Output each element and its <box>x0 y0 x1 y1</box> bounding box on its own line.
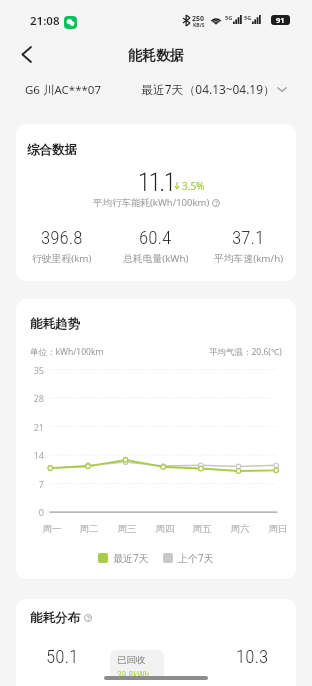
staticText: 3.5% <box>182 179 205 193</box>
staticText: 平均行车能耗(kWh/100km) <box>93 196 210 209</box>
staticText: 39.8kWh <box>117 669 150 680</box>
staticText: 周三 <box>112 523 142 535</box>
staticText: 能耗趋势 <box>30 316 80 332</box>
staticText: ? <box>215 199 218 207</box>
staticText: 91 <box>276 15 285 25</box>
staticText: 周六 <box>225 523 255 535</box>
staticText: 28 <box>16 392 44 404</box>
staticText: 周四 <box>150 523 180 535</box>
staticText: 35 <box>16 364 44 376</box>
staticText: 7 <box>16 478 44 490</box>
staticText: 平均车速(km/h) <box>214 252 284 265</box>
button[interactable]: 最近7天（04.13~04.19） <box>141 81 287 97</box>
staticText: 综合数据 <box>27 142 77 158</box>
staticText: 11.1 <box>138 168 175 197</box>
staticText: 行驶里程(km) <box>32 252 92 265</box>
staticText: 最近7天（04.13~04.19） <box>141 81 275 97</box>
staticText: 周二 <box>74 523 104 535</box>
staticText: 21 <box>16 421 44 433</box>
staticText: 单位：kWh/100km <box>30 346 104 358</box>
staticText: 已回收 <box>117 654 146 666</box>
staticText: 396.8 <box>41 226 83 248</box>
button[interactable]: Back <box>10 38 42 70</box>
staticText: 能耗数据 <box>128 47 184 65</box>
staticText: 250 <box>192 14 205 24</box>
staticText: 5G <box>225 14 233 21</box>
staticText: 总耗电量(kWh) <box>123 252 189 265</box>
staticText: 最近7天 <box>113 551 149 565</box>
staticText: 周日 <box>263 523 293 535</box>
staticText: ? <box>87 614 90 622</box>
staticText: G6 川AC***07 <box>25 82 101 98</box>
staticText: 5G <box>244 14 252 21</box>
button[interactable]: G6 川AC***07 <box>25 82 101 98</box>
staticText: 37.1 <box>232 226 265 248</box>
staticText: 50.1 <box>46 645 79 667</box>
staticText: 周一 <box>37 523 67 535</box>
staticText: 周五 <box>187 523 217 535</box>
staticText: 能耗分布 <box>30 610 80 626</box>
staticText: 平均气温：20.6(℃) <box>209 346 282 358</box>
staticText: 21:08 <box>30 13 60 29</box>
staticText: 14 <box>16 449 44 461</box>
staticText: 60.4 <box>139 226 172 248</box>
staticText: KB/S <box>193 22 205 29</box>
staticText: 上个7天 <box>178 551 214 565</box>
staticText: 10.3 <box>236 645 269 667</box>
staticText: 0 <box>16 506 44 518</box>
